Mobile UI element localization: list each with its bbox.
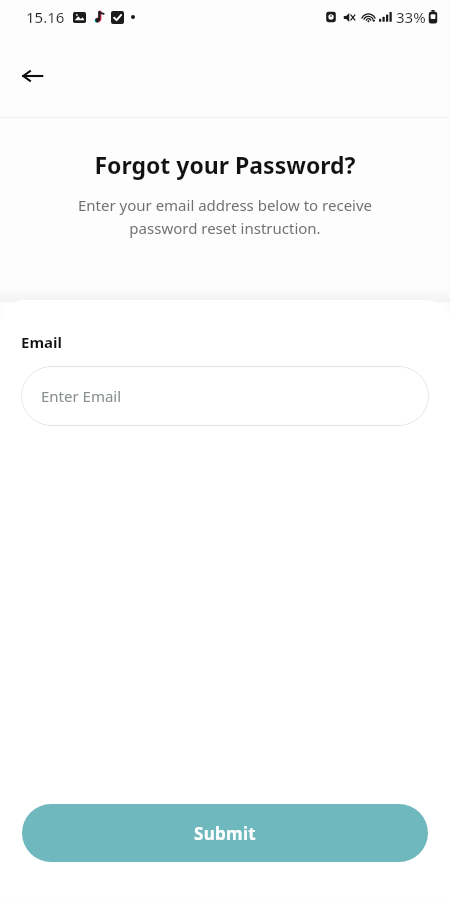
staticText: 33% — [396, 7, 426, 27]
staticText: 15.16 — [26, 7, 65, 27]
button[interactable]: Submit — [22, 804, 428, 862]
button[interactable]: Enter Email — [21, 366, 429, 426]
staticText: Submit — [194, 822, 256, 845]
staticText: Enter Email — [41, 386, 122, 406]
staticText: Forgot your Password? — [0, 149, 450, 180]
staticText: Email — [21, 332, 62, 352]
staticText: Enter your email address below to receiv… — [28, 195, 422, 238]
button[interactable]: Back — [9, 52, 57, 100]
